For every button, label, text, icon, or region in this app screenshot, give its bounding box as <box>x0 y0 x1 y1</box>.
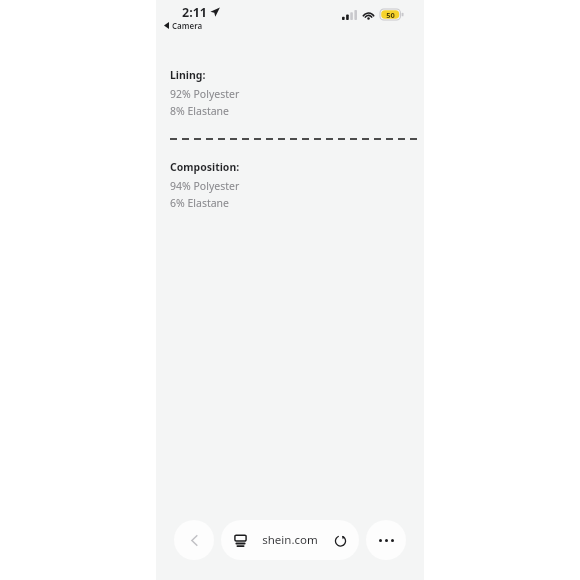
staticText: Camera <box>172 20 203 31</box>
staticText: 6% Elastane <box>170 196 230 210</box>
staticText: 94% Polyester <box>170 179 240 193</box>
staticText: 2:11 <box>182 4 207 21</box>
staticText: 8% Elastane <box>170 104 230 118</box>
button[interactable]: Page settings <box>232 532 248 548</box>
button[interactable]: More <box>366 520 406 560</box>
button[interactable]: Page settings <box>221 520 359 560</box>
button[interactable]: Reload <box>332 532 348 548</box>
staticText: 92% Polyester <box>170 87 240 101</box>
staticText: shein.com <box>262 532 318 548</box>
staticText: 50 <box>386 10 395 20</box>
button[interactable]: Back <box>174 520 214 560</box>
staticText: Composition: <box>170 160 240 174</box>
staticText: Lining: <box>170 68 206 82</box>
